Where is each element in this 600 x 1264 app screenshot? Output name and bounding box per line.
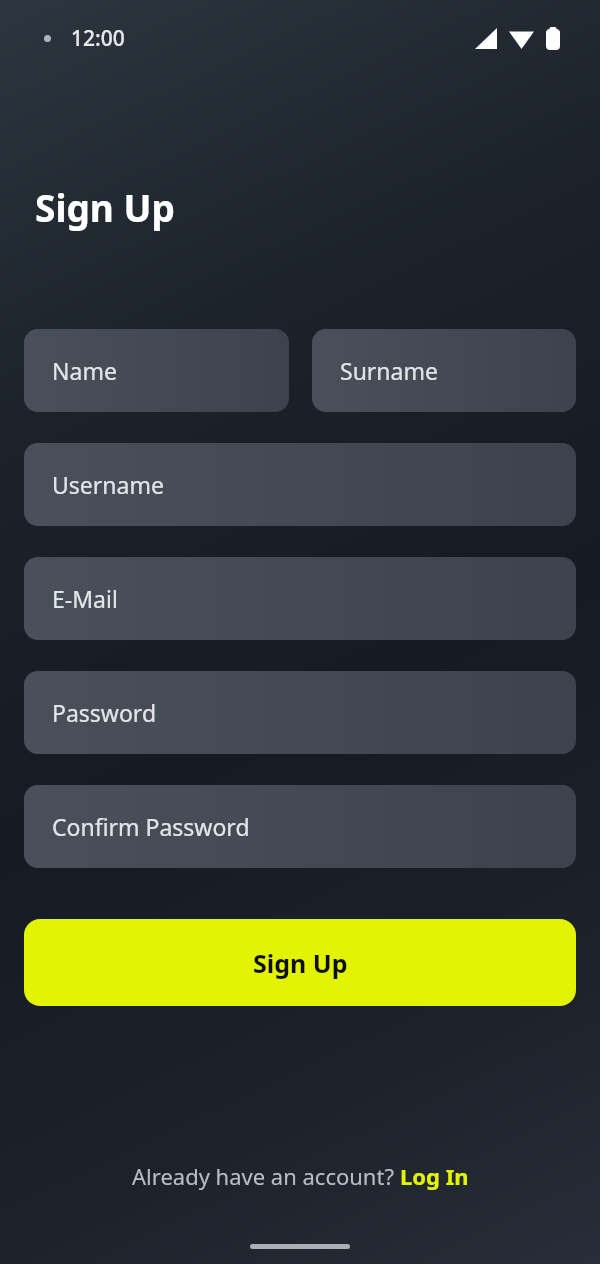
button[interactable]: Surname [312,329,576,412]
staticText: Sign Up [253,946,348,980]
button[interactable]: Name [24,329,289,412]
button[interactable]: E-Mail [24,557,576,640]
button[interactable]: Username [24,443,576,526]
staticText: Log In [400,1161,469,1191]
staticText: Name [52,355,117,386]
staticText: 12:00 [71,24,125,53]
button[interactable]: Log In [400,1161,469,1191]
button[interactable]: Confirm Password [24,785,576,868]
staticText: Already have an account? [132,1161,400,1191]
staticText: Username [52,469,164,500]
other: Battery [546,27,560,50]
staticText: Surname [340,355,438,386]
staticText: E-Mail [52,583,118,614]
button[interactable]: Sign Up [24,919,576,1006]
staticText: Confirm Password [52,811,250,842]
other: Wi-Fi [509,29,534,49]
other: Cellular signal [475,28,497,49]
staticText: Sign Up [35,182,175,232]
button[interactable]: Password [24,671,576,754]
staticText: Password [52,697,157,728]
